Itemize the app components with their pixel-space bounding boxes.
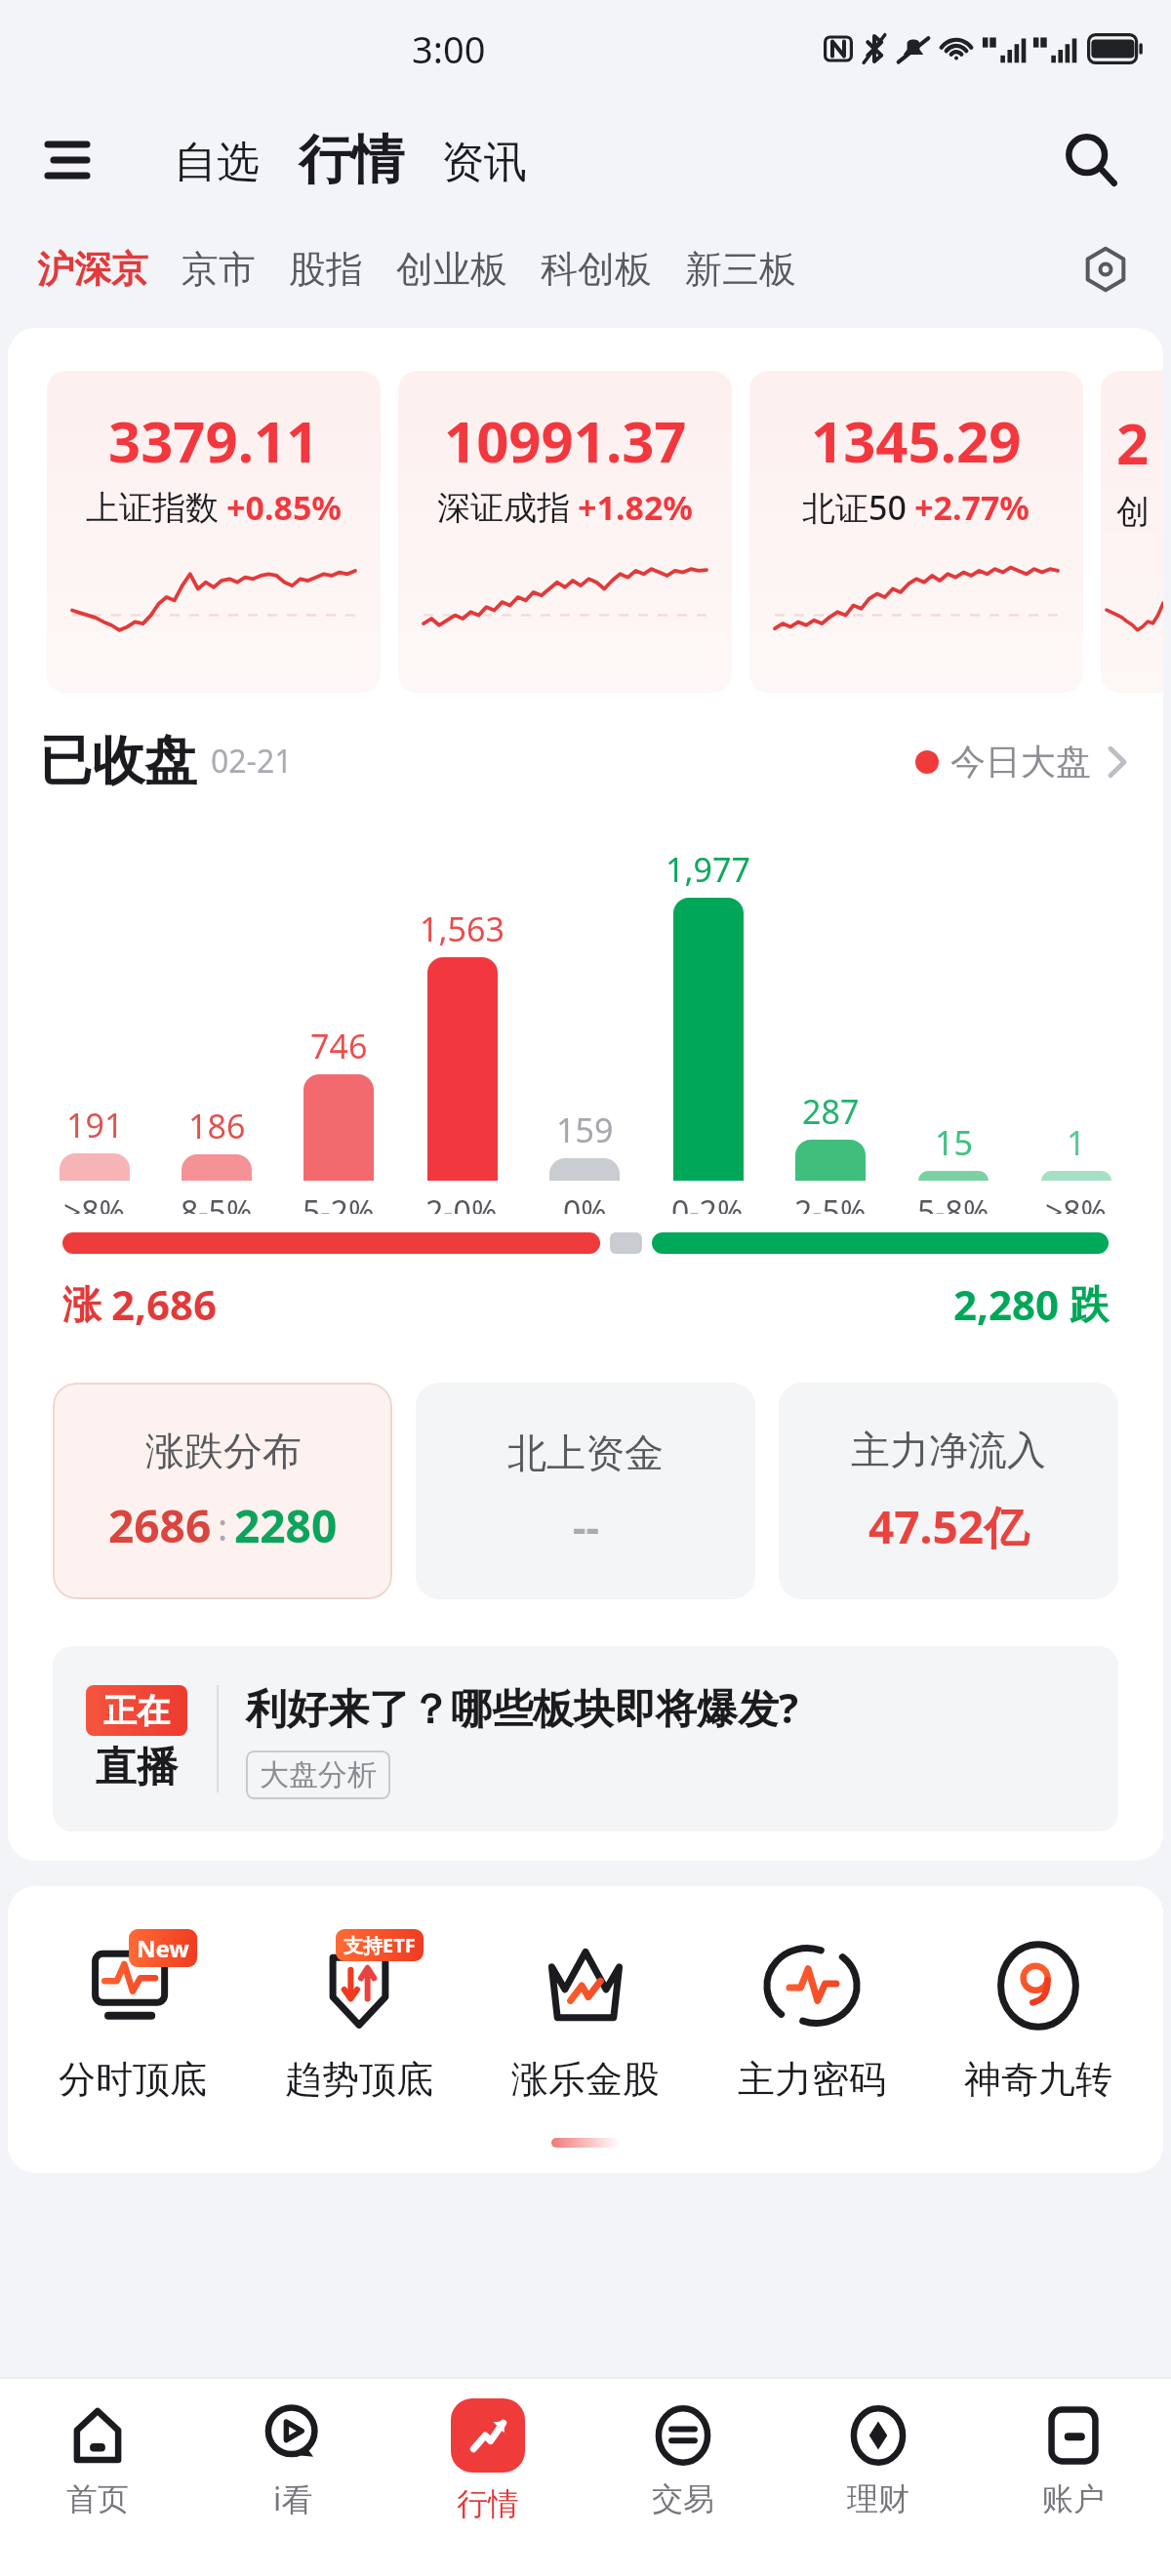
staticText: 0-2% [671,1190,744,1214]
button[interactable]: 今日大盘 [909,730,1134,793]
button[interactable]: 交易 [585,2379,781,2543]
staticText: 趋势顶底 [285,2056,433,2103]
staticText: 行情 [457,2484,519,2523]
staticText: 上证指数 [86,487,219,529]
staticText: 股指 [289,246,363,293]
staticText: 自选 [174,136,260,189]
button[interactable]: 北上资金 [416,1383,755,1599]
staticText: 1345.29 [811,402,1022,479]
staticText: 2-0% [425,1190,498,1214]
button[interactable]: Search [1050,119,1132,201]
staticText: 159 [556,1107,614,1152]
staticText: 47.52亿 [868,1496,1030,1557]
button[interactable]: 新三板 [681,236,800,302]
staticText: 3:00 [412,23,486,74]
staticText: : [218,1501,228,1551]
staticText: 科创板 [541,246,652,293]
staticText: 主力密码 [738,2056,886,2103]
button[interactable]: 沪深京 [33,236,152,302]
staticText: +1.82% [578,485,694,530]
staticText: 涨跌分布 [145,1427,302,1475]
staticText: 账户 [1042,2479,1105,2518]
staticText: 北上资金 [507,1429,664,1477]
button[interactable]: 自选 [168,128,265,197]
staticText: i看 [273,2477,313,2520]
staticText: 746 [310,1024,368,1068]
staticText: 涨 [62,1280,101,1329]
button[interactable]: 行情 [390,2379,585,2543]
staticText: 沪深京 [37,246,148,293]
button[interactable]: 1345.29 [749,371,1083,693]
button[interactable]: 涨乐金股 [472,1927,699,2109]
button[interactable]: i看 [195,2379,390,2543]
staticText: 191 [66,1103,124,1147]
staticText: 行情 [299,127,404,193]
staticText: 支持ETF [343,1932,416,1958]
staticText: 京市 [182,246,256,293]
staticText: 主力净流入 [851,1426,1046,1474]
button[interactable]: 资讯 [435,128,533,197]
staticText: +0.85% [226,485,343,530]
staticText: +2.77% [914,485,1030,530]
staticText: 大盘分析 [260,1756,377,1793]
button[interactable]: 10991.37 [398,371,732,693]
staticText: 2280 [234,1495,338,1556]
staticText: -- [573,1499,599,1554]
button[interactable]: 京市 [178,236,260,302]
button[interactable]: 首页 [0,2379,195,2543]
staticText: 利好来了？哪些板块即将爆发? [246,1679,799,1735]
staticText: New [137,1932,189,1964]
button[interactable]: 创业板 [392,236,511,302]
staticText: 15 [935,1120,973,1165]
staticText: 北证50 [802,485,907,530]
button[interactable]: 2 [1101,371,1163,693]
button[interactable]: New [20,1927,246,2109]
staticText: 分时顶底 [59,2056,207,2103]
staticText: 正在 [103,1690,170,1732]
staticText: 287 [802,1089,860,1134]
staticText: 10991.37 [444,402,687,479]
staticText: 8-5% [181,1190,253,1214]
staticText: 2,280 [953,1276,1060,1332]
button[interactable]: 正在 [53,1646,1118,1831]
button[interactable]: 行情 [293,123,410,197]
staticText: 理财 [847,2479,909,2518]
button[interactable]: 主力净流入 [779,1383,1118,1599]
button[interactable]: 涨跌分布 [53,1383,392,1599]
staticText: 1,977 [666,847,750,892]
staticText: 创 [1116,491,1150,533]
staticText: 3379.11 [108,402,319,479]
button[interactable]: 账户 [976,2379,1171,2543]
button[interactable]: 3379.11 [47,371,381,693]
staticText: 02-21 [211,740,293,783]
staticText: 今日大盘 [950,740,1091,784]
staticText: 5-2% [303,1190,375,1214]
staticText: 2 [1116,404,1150,481]
staticText: 首页 [66,2479,129,2518]
staticText: 跌 [1070,1280,1109,1329]
staticText: 186 [188,1104,246,1148]
staticText: 1 [1067,1120,1086,1165]
button[interactable]: Settings [1070,233,1142,305]
button[interactable]: 股指 [285,236,367,302]
staticText: >8% [63,1190,126,1214]
button[interactable]: 支持ETF [246,1927,472,2109]
staticText: 神奇九转 [964,2056,1112,2103]
staticText: 涨乐金股 [511,2056,660,2103]
staticText: 创业板 [396,246,507,293]
button[interactable]: 神奇九转 [925,1927,1151,2109]
staticText: 2,686 [111,1276,218,1332]
staticText: 5-8% [917,1190,989,1214]
staticText: 资讯 [441,136,527,189]
button[interactable]: 科创板 [537,236,656,302]
staticText: 0% [563,1190,607,1214]
staticText: 交易 [652,2479,714,2518]
staticText: 新三板 [685,246,796,293]
staticText: 2686 [108,1495,212,1556]
staticText: >8% [1045,1190,1108,1214]
staticText: 深证成指 [437,487,570,529]
staticText: 2-5% [794,1190,867,1214]
button[interactable]: 理财 [781,2379,976,2543]
button[interactable]: 主力密码 [699,1927,925,2109]
button[interactable]: Menu [33,126,101,194]
